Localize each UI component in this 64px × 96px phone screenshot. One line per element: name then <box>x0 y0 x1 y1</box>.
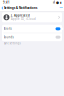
button[interactable]: J. Appleseed <box>2 12 62 22</box>
staticText: ••• <box>59 6 62 10</box>
staticText: Apple ID, iCloud <box>11 17 36 21</box>
staticText: J. Appleseed <box>11 14 30 17</box>
staticText: 9:41 <box>3 1 10 4</box>
button[interactable]: Back <box>1 5 4 11</box>
button[interactable]: Sounds <box>2 33 62 41</box>
staticText: ıl ⬤ ▮ <box>53 1 61 4</box>
button[interactable]: More options <box>59 5 63 11</box>
staticText: Settings & Notifications <box>4 6 37 10</box>
button[interactable]: Alerts <box>2 25 62 33</box>
staticText: Sounds <box>3 35 13 39</box>
staticText: Sync settings <box>3 41 20 45</box>
staticText: Alerts <box>3 27 11 30</box>
